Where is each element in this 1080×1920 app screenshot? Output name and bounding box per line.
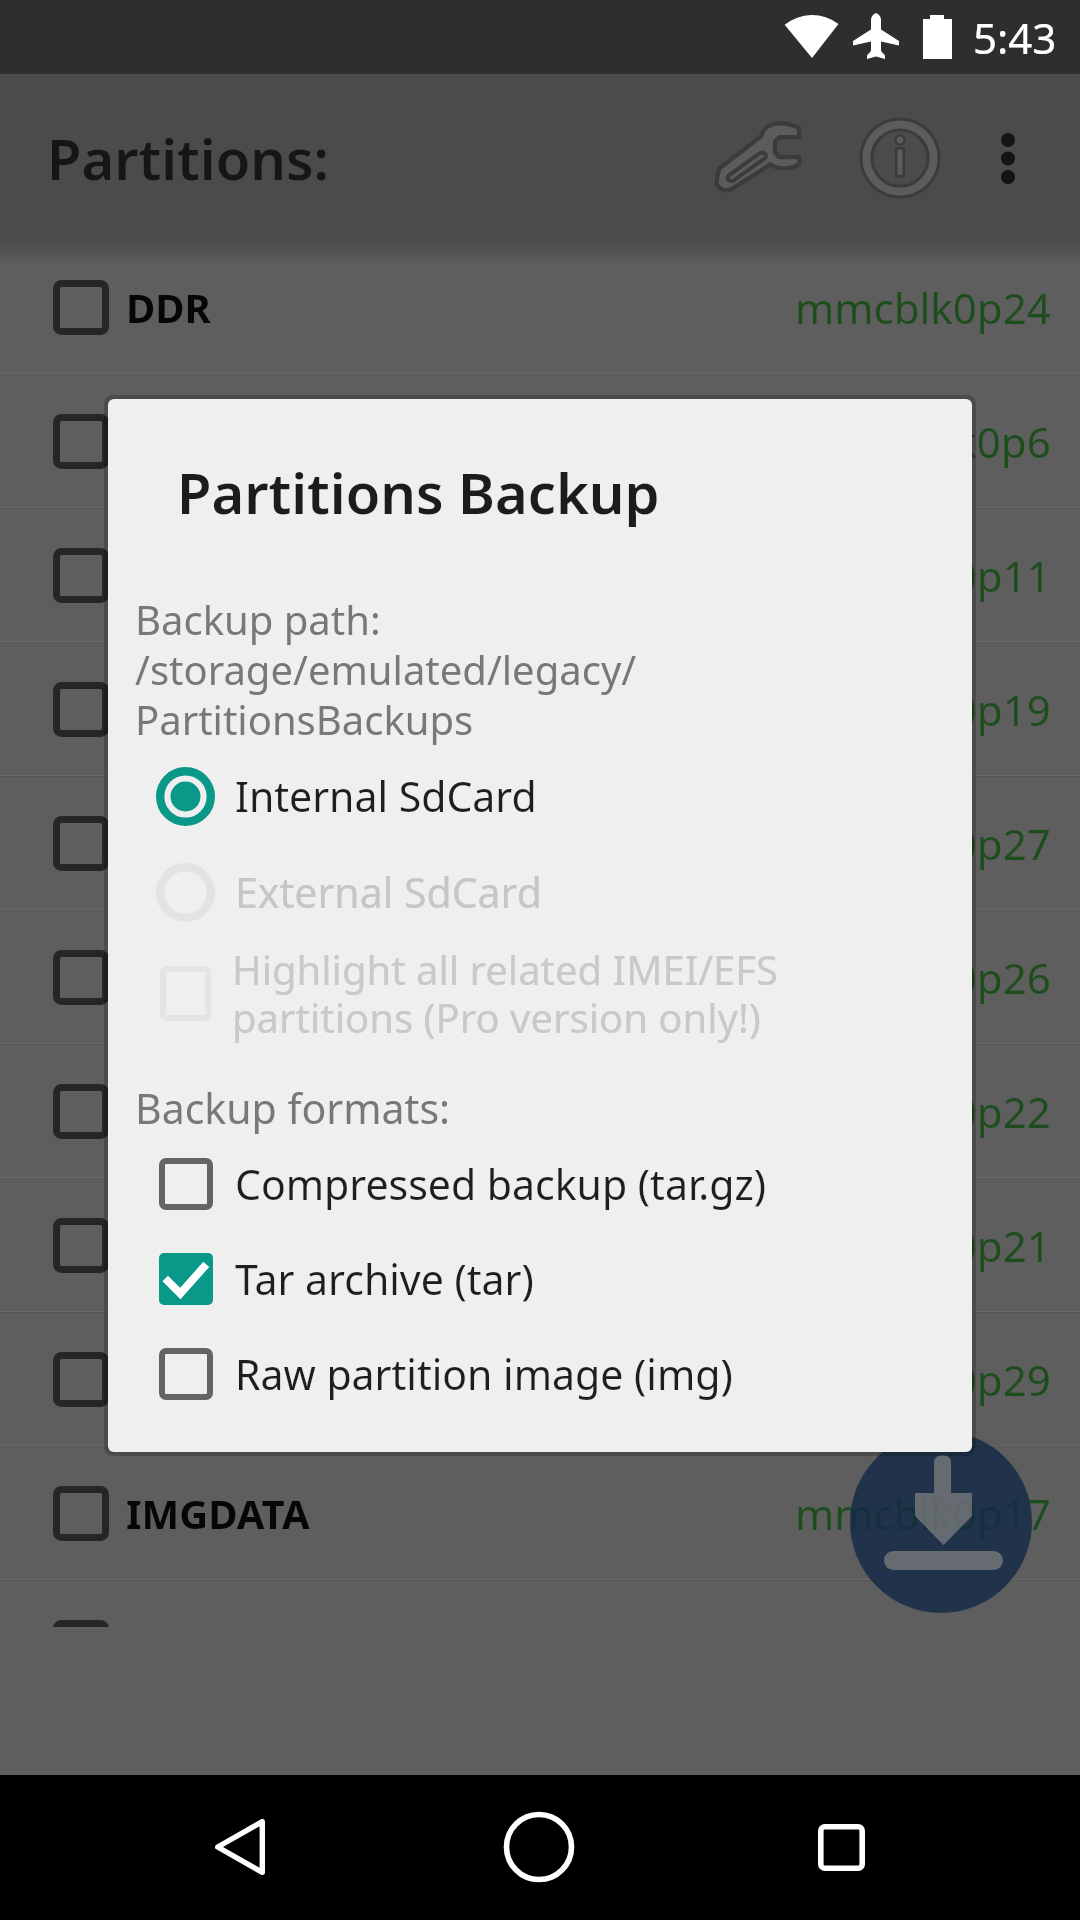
button[interactable]: mmcblk0p6 xyxy=(0,375,1080,509)
staticText: Partitions: xyxy=(47,120,330,196)
staticText: Tar archive (tar) xyxy=(235,1251,534,1307)
button[interactable]: DDR xyxy=(0,241,1080,375)
button[interactable]: mmcblk0p27 xyxy=(0,777,1080,911)
staticText: DDR xyxy=(126,280,211,334)
staticText: Backup formats: xyxy=(135,1080,451,1136)
button[interactable]: Recents xyxy=(771,1777,911,1917)
staticText: mmcblk0p29 xyxy=(795,1351,1051,1408)
staticText: Partitions Backup xyxy=(177,454,660,530)
button[interactable]: mmcblk0p22 xyxy=(0,1045,1080,1179)
staticText: mmcblk0p6 xyxy=(819,413,1051,470)
staticText: Internal SdCard xyxy=(235,768,537,824)
button[interactable]: mmcblk0p11 xyxy=(0,509,1080,643)
button[interactable]: mmcblk0p18 xyxy=(0,1581,1080,1627)
staticText: mmcblk0p27 xyxy=(795,815,1051,872)
button[interactable]: More options xyxy=(953,103,1063,213)
staticText: Raw partition image (img) xyxy=(235,1346,733,1402)
button[interactable]: mmcblk0p19 xyxy=(0,643,1080,777)
button[interactable]: Compressed backup (tar.gz) xyxy=(108,1136,972,1231)
staticText: mmcblk0p11 xyxy=(795,547,1051,604)
button[interactable]: Highlight all related IMEI/EFS partition… xyxy=(108,921,972,1065)
button[interactable]: IMGDATA xyxy=(0,1447,1080,1581)
button[interactable]: Home xyxy=(469,1777,609,1917)
staticText: mmcblk0p26 xyxy=(795,949,1051,1006)
button[interactable]: Internal SdCard xyxy=(108,748,972,844)
button[interactable]: Info xyxy=(845,103,955,213)
staticText: Compressed backup (tar.gz) xyxy=(235,1156,767,1212)
button[interactable]: Tools xyxy=(712,123,800,192)
staticText: IMGDATA xyxy=(126,1486,310,1540)
button[interactable]: mmcblk0p26 xyxy=(0,911,1080,1045)
staticText: mmcblk0p22 xyxy=(795,1083,1051,1140)
button[interactable]: Backup selected partitions xyxy=(850,1431,1032,1613)
staticText: mmcblk0p17 xyxy=(795,1485,1051,1542)
staticText: Highlight all related IMEI/EFS partition… xyxy=(232,942,779,1044)
staticText: External SdCard xyxy=(235,864,542,920)
button[interactable]: Raw partition image (img) xyxy=(108,1326,972,1421)
staticText: Backup path: /storage/emulated/legacy/ P… xyxy=(135,592,637,747)
button[interactable]: mmcblk0p21 xyxy=(0,1179,1080,1313)
staticText: mmcblk0p21 xyxy=(795,1217,1051,1274)
button[interactable]: Back xyxy=(170,1777,310,1917)
button[interactable]: mmcblk0p29 xyxy=(0,1313,1080,1447)
staticText: mmcblk0p24 xyxy=(795,279,1051,336)
button[interactable]: External SdCard xyxy=(108,844,972,940)
button[interactable]: Tar archive (tar) xyxy=(108,1231,972,1326)
staticText: mmcblk0p19 xyxy=(795,681,1051,738)
staticText: 5:43 xyxy=(973,9,1057,66)
